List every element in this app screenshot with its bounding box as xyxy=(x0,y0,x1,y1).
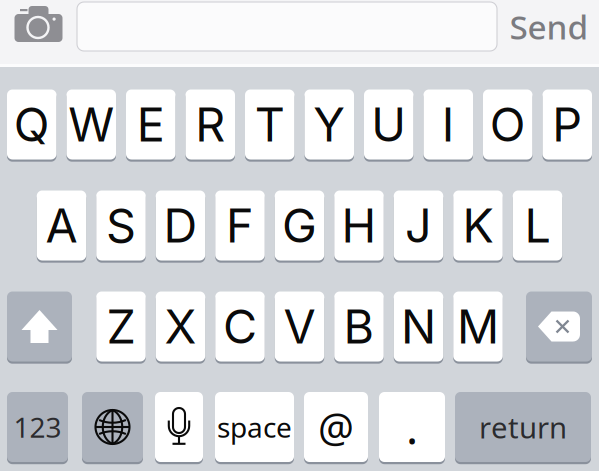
staticText: M xyxy=(457,298,499,355)
button[interactable]: Next keyboard xyxy=(82,390,143,463)
button[interactable]: Numbers xyxy=(7,390,68,463)
staticText: A xyxy=(45,197,77,254)
button[interactable]: Send xyxy=(504,6,594,46)
staticText: K xyxy=(462,197,493,254)
button[interactable]: C xyxy=(215,290,265,363)
staticText: B xyxy=(343,298,374,355)
button[interactable]: G xyxy=(275,189,324,262)
button[interactable]: return xyxy=(455,390,591,463)
button[interactable]: O xyxy=(483,88,532,161)
staticText: P xyxy=(552,96,582,153)
staticText: Q xyxy=(14,96,50,153)
button[interactable]: At sign xyxy=(304,390,368,463)
button[interactable]: L xyxy=(513,189,562,262)
staticText: I xyxy=(442,96,455,153)
button[interactable]: Period xyxy=(379,390,445,463)
staticText: Send xyxy=(509,4,588,49)
button[interactable]: S xyxy=(96,189,146,262)
button[interactable]: Y xyxy=(304,88,354,161)
staticText: N xyxy=(401,298,436,355)
button[interactable]: K xyxy=(453,189,503,262)
staticText: W xyxy=(68,96,114,153)
staticText: R xyxy=(195,96,225,153)
staticText: @ xyxy=(318,400,354,453)
button[interactable]: Z xyxy=(96,290,146,363)
staticText: Y xyxy=(313,96,345,153)
button[interactable]: Dictate xyxy=(155,390,203,463)
button[interactable]: F xyxy=(215,189,265,262)
button[interactable]: Q xyxy=(7,88,56,161)
staticText: H xyxy=(341,197,376,254)
button[interactable]: Delete xyxy=(526,290,592,363)
staticText: O xyxy=(490,96,526,153)
button[interactable]: B xyxy=(334,290,384,363)
staticText: G xyxy=(282,197,317,254)
button[interactable]: V xyxy=(275,290,324,363)
staticText: T xyxy=(255,96,285,153)
button[interactable]: T xyxy=(245,88,294,161)
staticText: D xyxy=(163,197,197,254)
button[interactable]: I xyxy=(423,88,473,161)
button[interactable]: P xyxy=(542,88,592,161)
staticText: space xyxy=(217,408,292,446)
staticText: . xyxy=(406,397,418,457)
staticText: S xyxy=(106,197,136,254)
button[interactable]: J xyxy=(394,189,443,262)
button[interactable]: Shift xyxy=(7,290,72,363)
staticText: X xyxy=(164,298,196,355)
button[interactable]: A xyxy=(37,189,86,262)
staticText: 123 xyxy=(13,408,61,446)
staticText: C xyxy=(223,298,257,355)
button[interactable]: H xyxy=(334,189,384,262)
button[interactable]: E xyxy=(126,88,175,161)
staticText: F xyxy=(226,197,254,254)
staticText: return xyxy=(479,407,567,446)
button[interactable]: U xyxy=(364,88,413,161)
button[interactable]: M xyxy=(453,290,503,363)
button[interactable]: W xyxy=(66,88,116,161)
staticText: E xyxy=(137,96,165,153)
button[interactable]: space xyxy=(215,390,294,463)
staticText: J xyxy=(405,197,432,254)
staticText: L xyxy=(524,197,550,254)
staticText: V xyxy=(283,298,315,355)
button[interactable]: D xyxy=(156,189,205,262)
button[interactable]: X xyxy=(156,290,205,363)
staticText: U xyxy=(371,96,406,153)
staticText: Z xyxy=(106,298,135,355)
button[interactable]: N xyxy=(394,290,443,363)
button[interactable]: R xyxy=(185,88,235,161)
button[interactable]: Camera xyxy=(14,6,62,42)
